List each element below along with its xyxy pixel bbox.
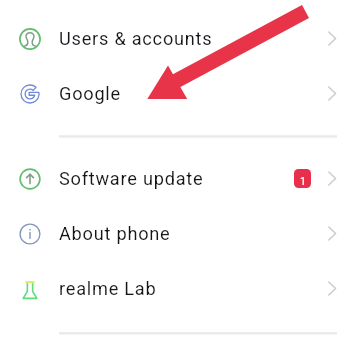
staticText: Software update xyxy=(59,168,294,189)
button[interactable]: realme Lab xyxy=(0,261,350,316)
button[interactable]: About phone xyxy=(0,206,350,261)
button[interactable]: Google xyxy=(0,66,350,121)
staticText: realme Lab xyxy=(59,278,328,299)
staticText: About phone xyxy=(59,223,328,244)
button[interactable]: Software update xyxy=(0,151,350,206)
button[interactable]: Users & accounts xyxy=(0,11,350,66)
staticText: Google xyxy=(59,83,328,104)
staticText: 1 xyxy=(300,175,306,187)
staticText: Users & accounts xyxy=(59,28,328,49)
